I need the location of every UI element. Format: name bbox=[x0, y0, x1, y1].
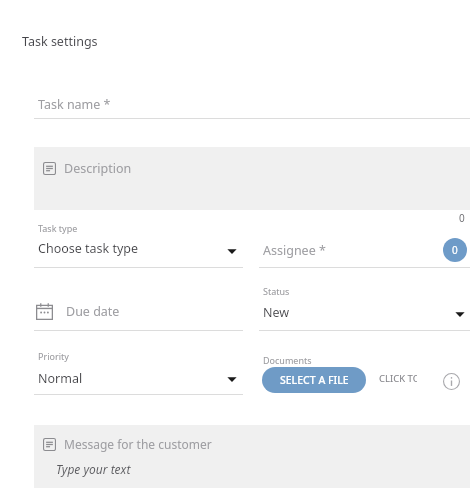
staticText: Assignee * bbox=[263, 242, 326, 259]
button[interactable]: Task type bbox=[34, 222, 243, 268]
button[interactable]: Status bbox=[259, 285, 470, 331]
staticText: Task type bbox=[38, 222, 78, 234]
staticText: SELECT A FILE bbox=[280, 373, 349, 387]
button[interactable]: Assignee * bbox=[259, 222, 470, 268]
staticText: New bbox=[263, 304, 290, 321]
button[interactable]: CLICK TO bbox=[379, 372, 417, 388]
button[interactable]: Due date bbox=[34, 296, 243, 331]
staticText: Task name * bbox=[38, 96, 111, 113]
staticText: Type your text bbox=[56, 461, 131, 477]
button[interactable]: Priority bbox=[34, 348, 243, 395]
button[interactable]: Information about documents bbox=[441, 371, 461, 391]
staticText: CLICK TO bbox=[379, 372, 417, 385]
staticText: Status bbox=[263, 285, 290, 297]
button[interactable]: Message for the customer bbox=[34, 425, 470, 488]
button[interactable]: Task name * bbox=[34, 88, 470, 119]
staticText: 0 bbox=[459, 211, 465, 225]
button[interactable]: Description bbox=[34, 147, 470, 210]
staticText: Description bbox=[64, 160, 132, 177]
staticText: 0 bbox=[452, 243, 458, 257]
staticText: Message for the customer bbox=[64, 436, 212, 452]
staticText: Task settings bbox=[22, 33, 98, 50]
staticText: Choose task type bbox=[38, 240, 139, 257]
staticText: Normal bbox=[38, 370, 83, 387]
staticText: Due date bbox=[66, 303, 120, 320]
button[interactable]: SELECT A FILE bbox=[262, 367, 366, 393]
staticText: Priority bbox=[38, 350, 69, 362]
staticText: Documents bbox=[263, 354, 312, 366]
